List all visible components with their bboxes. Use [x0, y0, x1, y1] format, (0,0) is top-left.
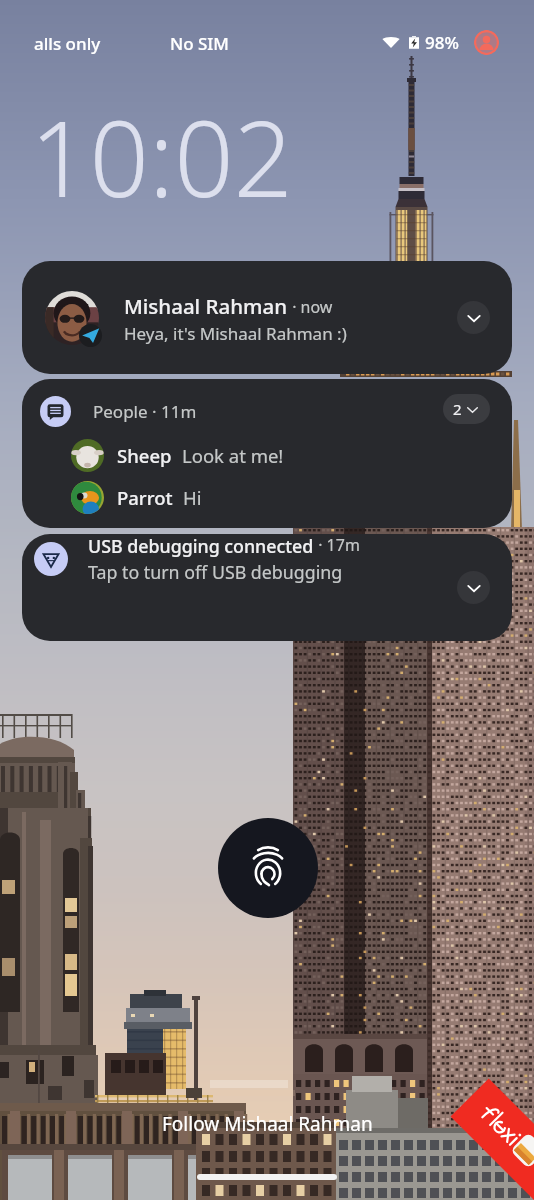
button[interactable]: Fingerprint unlock [218, 818, 318, 918]
button[interactable]: Expand group [443, 394, 490, 424]
staticText: alls only [34, 32, 101, 55]
staticText: Mishaal Rahman [124, 292, 288, 320]
staticText: 10:02 [30, 86, 293, 228]
staticText: Parrot [117, 485, 173, 510]
button[interactable]: User profile [474, 30, 499, 55]
button[interactable]: People · 11m [22, 379, 512, 528]
staticText: Follow Mishaal Rahman [162, 1111, 373, 1137]
staticText: USB debugging connected [88, 534, 314, 558]
staticText: · now [288, 296, 333, 318]
staticText: Heya, it's Mishaal Rahman :) [124, 322, 347, 345]
button[interactable]: Expand notification [457, 301, 490, 334]
staticText: People · 11m [93, 400, 197, 423]
staticText: 98% [425, 31, 459, 54]
staticText: Hi [183, 485, 202, 510]
button[interactable]: Expand notification [457, 571, 490, 604]
staticText: Tap to turn off USB debugging [88, 560, 343, 584]
staticText: Sheep [117, 443, 172, 468]
button[interactable]: USB debugging connected [22, 534, 512, 641]
button[interactable]: Mishaal Rahman [22, 261, 512, 374]
staticText: 2 [453, 399, 462, 419]
staticText: No SIM [170, 32, 229, 55]
staticText: · 17m [314, 534, 360, 556]
staticText: Look at me! [182, 443, 284, 468]
